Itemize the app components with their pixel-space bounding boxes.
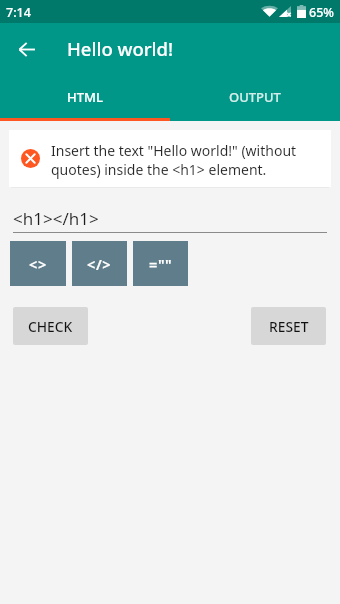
staticText: Insert the text "Hello world!" (without … xyxy=(51,141,319,179)
staticText: 7:14 xyxy=(6,4,31,21)
button[interactable]: Insert opening tag xyxy=(10,241,66,286)
button[interactable]: Back xyxy=(13,35,41,63)
staticText: CHECK xyxy=(28,317,73,336)
staticText: <> xyxy=(29,254,47,274)
button[interactable]: Insert the text "Hello world!" (without … xyxy=(9,130,331,187)
staticText: 65% xyxy=(309,4,334,21)
button[interactable]: HTML xyxy=(0,73,170,121)
staticText: RESET xyxy=(269,317,309,336)
staticText: <h1></h1> xyxy=(13,207,99,230)
button[interactable]: OUTPUT xyxy=(170,73,340,121)
staticText: </> xyxy=(87,254,112,274)
staticText: ="" xyxy=(149,254,173,274)
button[interactable]: Insert closing tag xyxy=(72,241,127,286)
button[interactable]: HTML code editor xyxy=(13,199,327,233)
staticText: HTML xyxy=(67,88,103,106)
staticText: Hello world! xyxy=(67,36,174,61)
button[interactable]: CHECK xyxy=(13,307,88,345)
button[interactable]: RESET xyxy=(251,307,326,345)
button[interactable]: Insert attribute xyxy=(133,241,188,286)
staticText: OUTPUT xyxy=(229,88,281,106)
